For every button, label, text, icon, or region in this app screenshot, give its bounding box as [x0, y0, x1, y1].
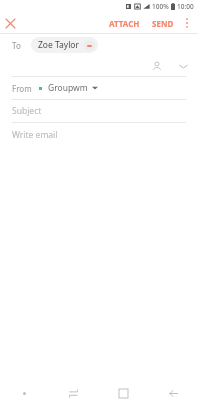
- staticText: Write email: [12, 129, 58, 141]
- button[interactable]: Add from contacts: [148, 57, 166, 75]
- staticText: SEND: [152, 18, 174, 29]
- button[interactable]: Back: [148, 380, 198, 407]
- staticText: Groupwm: [48, 82, 88, 94]
- staticText: To: [12, 40, 21, 51]
- button[interactable]: Hide keyboard: [0, 380, 49, 407]
- staticText: Zoe Taylor: [38, 39, 80, 51]
- button[interactable]: From: [0, 77, 198, 99]
- staticText: Subject: [12, 105, 42, 117]
- button[interactable]: Write email: [0, 123, 198, 147]
- button[interactable]: Close: [0, 13, 20, 33]
- button[interactable]: ATTACH: [105, 15, 144, 32]
- button[interactable]: More options: [178, 14, 196, 32]
- staticText: 100%: [152, 2, 169, 11]
- button[interactable]: Expand recipients: [174, 57, 192, 75]
- staticText: ATTACH: [109, 18, 140, 29]
- staticText: 10:00: [177, 2, 194, 11]
- button[interactable]: Home: [98, 380, 148, 407]
- button[interactable]: Recents: [49, 380, 98, 407]
- button[interactable]: Subject: [0, 100, 198, 122]
- button[interactable]: Zoe Taylor: [31, 37, 98, 53]
- staticText: From: [12, 83, 32, 94]
- button[interactable]: SEND: [148, 15, 178, 32]
- button[interactable]: Remove Zoe Taylor: [84, 40, 95, 51]
